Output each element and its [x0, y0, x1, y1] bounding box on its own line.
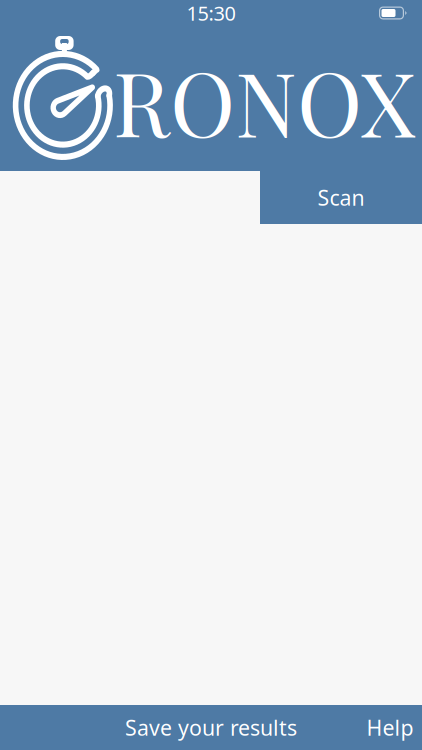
button[interactable]: Save your results — [125, 713, 297, 742]
staticText: RONOX — [113, 42, 416, 160]
staticText: Help — [366, 713, 413, 742]
button[interactable]: Help — [366, 713, 413, 742]
staticText: Save your results — [125, 713, 297, 742]
staticText: Scan — [317, 183, 364, 212]
button[interactable]: Scan — [260, 171, 422, 224]
staticText: 15:30 — [186, 0, 235, 26]
